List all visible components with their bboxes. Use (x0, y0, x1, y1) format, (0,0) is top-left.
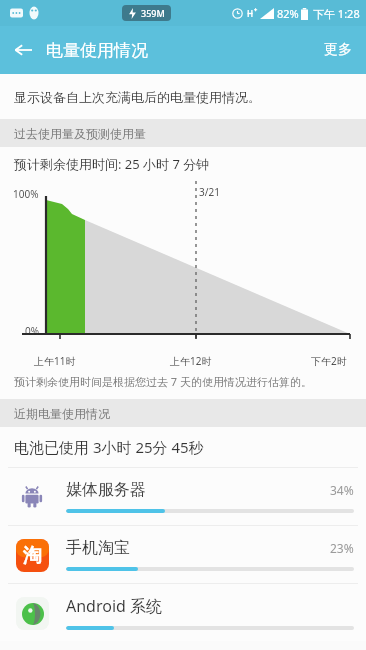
staticText: Android 系统 (66, 595, 354, 617)
staticText: 23% (330, 540, 354, 556)
staticText: 下午 1:28 (313, 6, 360, 21)
staticText: 过去使用量及预测使用量 (14, 126, 146, 141)
staticText: 电池已使用 3小时 25分 45秒 (14, 437, 204, 457)
button[interactable]: 更多 (310, 29, 366, 71)
staticText: 手机淘宝 (66, 538, 330, 558)
staticText: 媒体服务器 (66, 480, 330, 500)
staticText: 上午11时 (34, 354, 76, 368)
staticText: 淘 (23, 544, 42, 568)
button[interactable]: Android 系统 (0, 584, 366, 641)
staticText: 近期电量使用情况 (14, 406, 110, 421)
staticText: 82% (277, 6, 299, 21)
button[interactable]: 100% (0, 179, 366, 354)
staticText: 3/21 (199, 185, 220, 199)
staticText: 更多 (324, 41, 352, 59)
button[interactable]: 淘 (0, 526, 366, 583)
button[interactable]: 媒体服务器 (0, 468, 366, 525)
staticText: 显示设备自上次充满电后的电量使用情况。 (14, 89, 261, 105)
staticText: 上午12时 (170, 354, 212, 368)
staticText: 0% (25, 324, 40, 338)
staticText: 预计剩余使用时间是根据您过去 7 天的使用情况进行估算的。 (14, 374, 313, 389)
staticText: 34% (330, 482, 354, 498)
staticText: 100% (13, 187, 39, 201)
staticText: 预计剩余使用时间: 25 小时 7 分钟 (14, 155, 210, 173)
button[interactable]: Back (0, 27, 46, 73)
staticText: 359M (141, 7, 165, 19)
staticText: 下午2时 (311, 354, 347, 368)
staticText: 电量使用情况 (46, 40, 148, 61)
